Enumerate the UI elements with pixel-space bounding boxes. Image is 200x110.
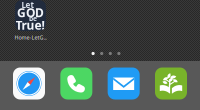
- button[interactable]: Mail: [108, 67, 140, 99]
- staticText: Let: [21, 0, 33, 10]
- button[interactable]: Safari: [13, 67, 45, 99]
- staticText: Home-LetG...: [14, 34, 46, 41]
- button[interactable]: Phone: [60, 67, 92, 99]
- button[interactable]: Bible: [155, 67, 187, 99]
- button[interactable]: Home-LetGodBeTrue: [15, 0, 46, 31]
- staticText: True!: [15, 17, 44, 33]
- staticText: be: [29, 14, 37, 23]
- staticText: GOD: [17, 4, 44, 20]
